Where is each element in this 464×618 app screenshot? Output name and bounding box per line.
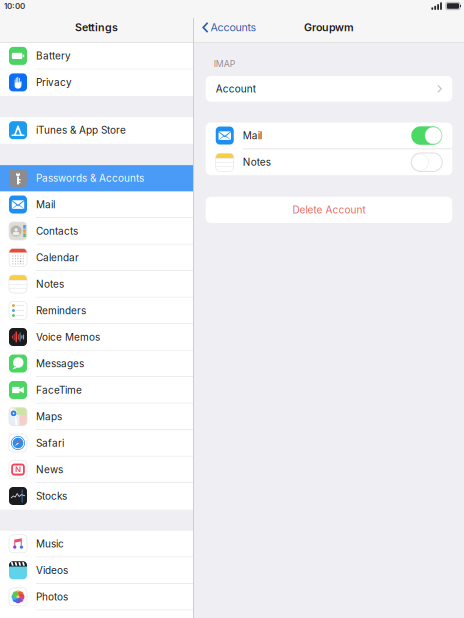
- staticText: Mail: [36, 198, 55, 211]
- staticText: Photos: [36, 591, 68, 603]
- staticText: Reminders: [36, 304, 86, 317]
- staticText: Settings: [75, 21, 118, 34]
- button[interactable]: Contacts: [0, 218, 193, 245]
- button[interactable]: N: [0, 457, 193, 483]
- staticText: Messages: [36, 357, 84, 370]
- staticText: Accounts: [211, 21, 257, 34]
- staticText: Mail: [243, 129, 262, 142]
- button[interactable]: Notes toggle: [409, 150, 444, 174]
- staticText: FaceTime: [36, 384, 82, 396]
- button[interactable]: Accounts: [194, 21, 257, 39]
- staticText: Notes: [36, 278, 64, 290]
- button[interactable]: Stocks: [0, 483, 193, 510]
- staticText: 10:00: [4, 1, 25, 11]
- staticText: Groupwm: [304, 21, 354, 34]
- button[interactable]: Mail toggle: [409, 123, 444, 148]
- staticText: News: [36, 463, 63, 476]
- staticText: Delete Account: [292, 204, 365, 216]
- staticText: Account: [216, 83, 256, 95]
- button[interactable]: FaceTime: [0, 377, 193, 404]
- button[interactable]: Delete Account: [206, 197, 452, 223]
- button[interactable]: Messages: [0, 351, 193, 377]
- staticText: Notes: [243, 156, 271, 168]
- button[interactable]: iTunes & App Store: [0, 117, 193, 144]
- button[interactable]: Calendar: [0, 245, 193, 271]
- staticText: Contacts: [36, 225, 78, 237]
- staticText: IMAP: [214, 58, 236, 69]
- staticText: Calendar: [36, 251, 79, 264]
- button[interactable]: Privacy: [0, 69, 193, 96]
- button[interactable]: Maps: [0, 404, 193, 430]
- button[interactable]: Videos: [0, 557, 193, 584]
- staticText: Maps: [36, 410, 62, 423]
- staticText: Passwords & Accounts: [36, 172, 144, 184]
- staticText: Safari: [36, 437, 64, 449]
- button[interactable]: Mail: [0, 192, 193, 218]
- staticText: iTunes & App Store: [36, 124, 126, 136]
- staticText: N: [15, 465, 21, 474]
- button[interactable]: Account: [206, 76, 452, 102]
- button[interactable]: Battery: [0, 43, 193, 69]
- button[interactable]: Reminders: [0, 298, 193, 324]
- staticText: Privacy: [36, 76, 72, 88]
- staticText: Videos: [36, 564, 68, 576]
- staticText: Battery: [36, 50, 71, 62]
- button[interactable]: Photos: [0, 584, 193, 610]
- staticText: Music: [36, 538, 64, 550]
- button[interactable]: Notes: [0, 271, 193, 298]
- button[interactable]: Music: [0, 531, 193, 557]
- button[interactable]: Safari: [0, 430, 193, 457]
- button[interactable]: Voice Memos: [0, 324, 193, 351]
- button[interactable]: Passwords & Accounts: [0, 165, 193, 192]
- staticText: Voice Memos: [36, 331, 100, 343]
- staticText: Stocks: [36, 490, 67, 502]
